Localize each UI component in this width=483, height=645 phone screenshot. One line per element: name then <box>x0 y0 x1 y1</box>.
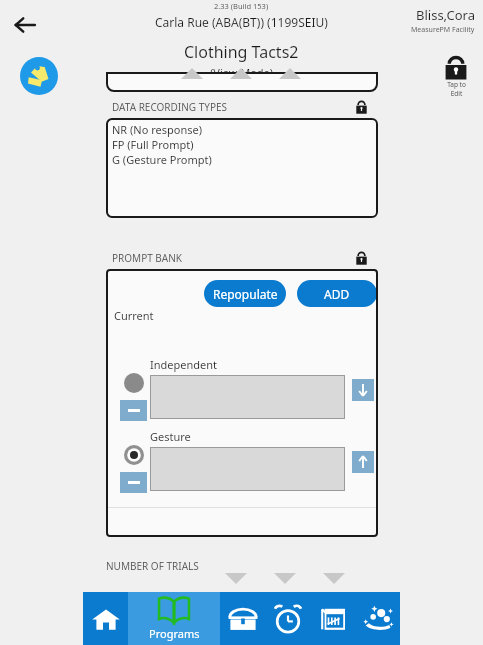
staticText: MeasurePM Facility <box>411 25 475 35</box>
staticText: Carla Rue (ABA(BT)) (1199SEIU) <box>155 14 328 30</box>
staticText: ADD <box>324 286 350 302</box>
staticText: Current <box>114 308 154 323</box>
staticText: G (Gesture Prompt) <box>112 152 212 167</box>
button[interactable] <box>150 375 345 419</box>
button[interactable]: Locked <box>355 251 368 265</box>
staticText: 2.33 (Build 153) <box>214 1 269 11</box>
staticText: FP (Full Prompt) <box>112 137 194 152</box>
button[interactable]: Move down <box>352 379 374 401</box>
button[interactable]: Navigation item <box>220 592 265 645</box>
staticText: Independent <box>150 357 218 372</box>
button[interactable] <box>150 447 345 491</box>
staticText: Repopulate <box>213 286 278 302</box>
button[interactable]: Select Gesture <box>124 445 144 465</box>
button[interactable]: Navigation item <box>83 592 128 645</box>
button[interactable]: Program icon <box>20 57 58 95</box>
staticText: DATA RECORDING TYPES <box>112 100 228 114</box>
button[interactable]: Back <box>6 6 44 44</box>
button[interactable]: Remove Gesture <box>120 472 147 493</box>
staticText: Gesture <box>150 429 191 444</box>
button[interactable]: Navigation item <box>310 592 355 645</box>
staticText: (View Mode) <box>210 65 274 80</box>
staticText: Tap to Edit <box>447 80 466 98</box>
button[interactable]: Navigation item <box>265 592 310 645</box>
staticText: Bliss,Cora <box>416 6 475 24</box>
button[interactable]: Locked <box>355 100 368 114</box>
staticText: PROMPT BANK <box>112 251 183 265</box>
staticText: Clothing Tacts2 <box>184 41 299 63</box>
button[interactable]: Select Independent <box>124 373 144 393</box>
staticText: NUMBER OF TRIALS <box>106 559 199 573</box>
button[interactable]: Remove Independent <box>120 400 147 421</box>
button[interactable]: ADD <box>297 280 377 307</box>
button[interactable]: Programs <box>128 592 220 645</box>
button[interactable]: Navigation item <box>355 592 400 645</box>
button[interactable]: Move up <box>352 451 374 473</box>
button[interactable]: Tap to Edit <box>443 55 469 98</box>
button[interactable]: Repopulate <box>204 280 286 307</box>
staticText: Programs <box>149 626 200 641</box>
staticText: NR (No response) <box>112 122 203 137</box>
